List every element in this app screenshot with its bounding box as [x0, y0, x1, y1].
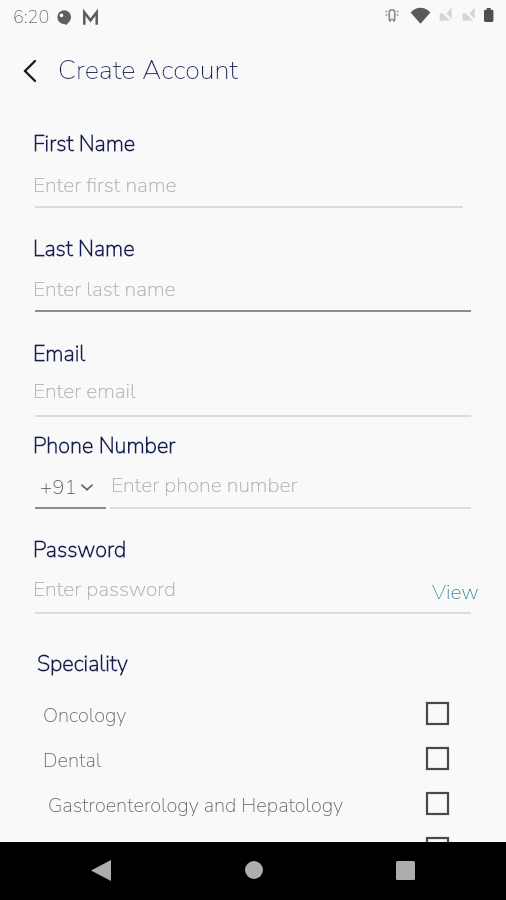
button[interactable]: Home: [213, 842, 293, 900]
button[interactable]: Oncology: [0, 690, 506, 735]
staticText: Last Name: [33, 234, 135, 264]
staticText: Oncology: [43, 702, 127, 729]
staticText: Password: [33, 535, 127, 565]
button[interactable]: Select country code: [79, 479, 95, 495]
staticText: 6:20: [13, 5, 50, 30]
staticText: Create Account: [58, 52, 239, 89]
staticText: Email: [33, 339, 86, 369]
button[interactable]: Dental: [0, 735, 506, 780]
staticText: Phone Number: [33, 431, 176, 461]
button[interactable]: Recent apps: [366, 842, 446, 900]
staticText: Enter email: [33, 377, 136, 406]
staticText: First Name: [33, 129, 136, 159]
staticText: Enter phone number: [111, 471, 298, 500]
staticText: Enter last name: [33, 275, 176, 304]
button[interactable]: Gastroenterology and Hepatology: [0, 780, 506, 825]
button[interactable]: View: [426, 573, 485, 612]
staticText: Gastroenterology and Hepatology: [48, 792, 344, 819]
staticText: Enter password: [33, 575, 176, 604]
button[interactable]: Back: [61, 842, 141, 900]
staticText: +91: [40, 473, 77, 501]
button[interactable]: Back: [6, 40, 50, 84]
staticText: Speciality: [37, 649, 128, 679]
staticText: View: [432, 578, 479, 607]
staticText: Dental: [43, 747, 102, 774]
staticText: Enter first name: [33, 171, 177, 200]
